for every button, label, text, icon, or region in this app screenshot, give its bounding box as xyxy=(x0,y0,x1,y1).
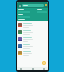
button[interactable] xyxy=(22,4,44,7)
button[interactable] xyxy=(17,43,48,50)
button[interactable]: Menu xyxy=(18,4,21,7)
button[interactable]: Add xyxy=(42,61,46,65)
button[interactable] xyxy=(17,22,48,29)
button[interactable] xyxy=(17,29,48,36)
button[interactable] xyxy=(17,36,48,43)
button[interactable] xyxy=(17,50,48,57)
